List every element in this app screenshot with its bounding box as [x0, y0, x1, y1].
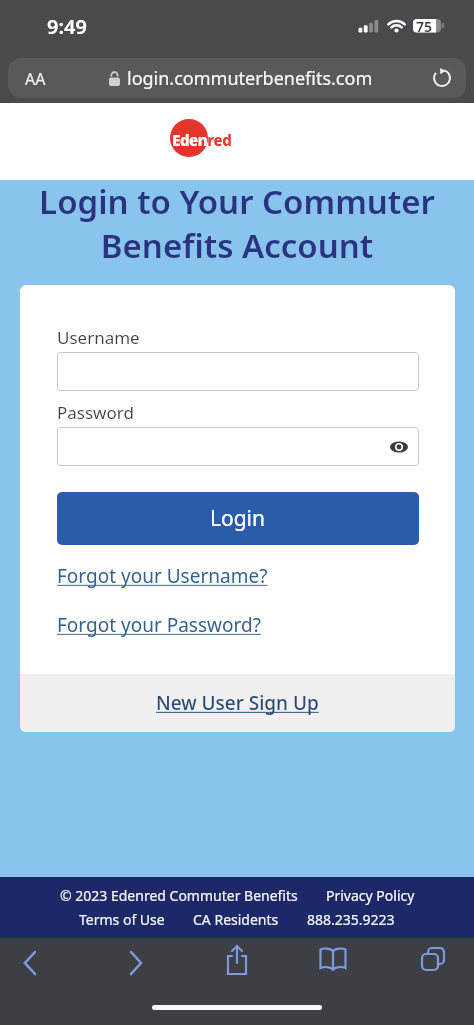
button[interactable]: New User Sign Up [156, 690, 319, 716]
staticText: Password [57, 401, 134, 424]
button[interactable] [124, 950, 148, 976]
staticText: AA [25, 68, 46, 90]
staticText: login.commuterbenefits.com [127, 66, 373, 91]
button[interactable] [57, 427, 419, 466]
staticText: Login [210, 504, 266, 533]
staticText: Username [57, 326, 140, 349]
staticText: New User Sign Up [156, 690, 319, 716]
button[interactable]: CA Residents [193, 910, 279, 929]
staticText: 9:49 [47, 13, 87, 40]
staticText: Edenred [172, 130, 232, 150]
staticText: 75 [416, 17, 433, 35]
staticText: Forgot your Username? [57, 563, 268, 589]
button[interactable] [432, 68, 452, 88]
button[interactable]: AA [8, 58, 466, 98]
staticText: 888.235.9223 [307, 910, 395, 929]
staticText: Login to Your Commuter Benefits Account [0, 179, 474, 267]
button[interactable]: Privacy Policy [326, 886, 415, 905]
button[interactable] [318, 946, 348, 972]
button[interactable]: Forgot your Username? [57, 563, 268, 589]
button[interactable] [420, 947, 448, 973]
staticText: Forgot your Password? [57, 612, 261, 638]
staticText: Terms of Use [79, 910, 165, 929]
button[interactable]: Login [57, 492, 419, 545]
button[interactable]: Forgot your Password? [57, 612, 261, 638]
button[interactable]: Terms of Use [79, 910, 165, 929]
button[interactable] [223, 943, 251, 977]
staticText: CA Residents [193, 910, 279, 929]
staticText: © 2023 Edenred Commuter Benefits [60, 886, 298, 905]
button[interactable] [57, 352, 419, 391]
staticText: Privacy Policy [326, 886, 415, 905]
button[interactable] [18, 950, 42, 976]
